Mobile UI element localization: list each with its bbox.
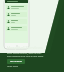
staticText: Get started — [10, 60, 22, 63]
button[interactable]: Get started — [7, 59, 25, 64]
button[interactable]: App bar — [5, 0, 28, 3]
staticText: Book appointments, view records and mana… — [7, 52, 44, 58]
staticText: Hospital Services — [7, 45, 43, 51]
button[interactable] — [6, 26, 27, 31]
button[interactable]: Learn more — [7, 65, 18, 68]
button[interactable] — [6, 5, 27, 10]
button[interactable] — [6, 12, 27, 17]
button[interactable] — [6, 19, 27, 24]
